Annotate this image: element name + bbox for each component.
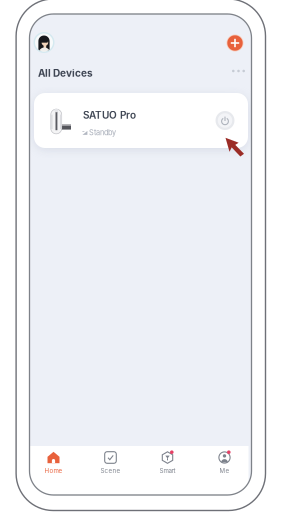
staticText: Me: [219, 467, 229, 474]
staticText: Standby: [89, 128, 116, 137]
button[interactable]: SATUO Pro: [34, 93, 248, 148]
staticText: Smart: [159, 467, 175, 474]
button[interactable]: Power: [215, 111, 234, 130]
staticText: Scene: [100, 467, 120, 474]
button[interactable]: Scene: [82, 446, 139, 495]
button[interactable]: Profile: [33, 32, 54, 53]
button[interactable]: More options: [223, 64, 245, 78]
button[interactable]: Home: [25, 446, 82, 495]
staticText: Home: [44, 467, 62, 474]
button[interactable]: Me: [196, 446, 253, 495]
staticText: SATUO Pro: [83, 109, 136, 121]
button[interactable]: Smart: [139, 446, 196, 495]
staticText: All Devices: [38, 67, 93, 79]
button[interactable]: Add device: [226, 34, 243, 51]
